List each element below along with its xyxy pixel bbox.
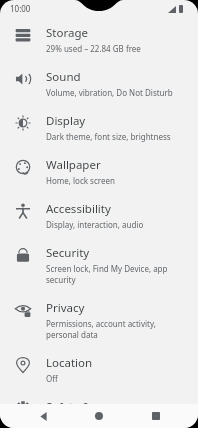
staticText: Emergency SOS, medical info, alerts — [46, 417, 181, 421]
staticText: Home, lock screen — [46, 175, 115, 186]
button[interactable]: Accessibility — [0, 193, 198, 237]
staticText: Wallpaper — [46, 157, 101, 173]
button[interactable]: Display — [0, 105, 198, 149]
staticText: Volume, vibration, Do Not Disturb — [46, 87, 173, 98]
button[interactable]: Back — [29, 404, 57, 428]
staticText: 29% used – 22.84 GB free — [46, 43, 141, 54]
staticText: Accessibility — [46, 201, 111, 217]
staticText: Display, interaction, audio — [46, 219, 144, 230]
staticText: Location — [46, 355, 93, 371]
staticText: Screen lock, Find My Device, app securit… — [46, 263, 188, 285]
staticText: Safety & emergency — [46, 399, 155, 415]
staticText: 10:00 — [10, 3, 31, 14]
staticText: Display — [46, 113, 86, 129]
button[interactable]: Sound — [0, 61, 198, 105]
button[interactable]: Security — [0, 237, 198, 292]
staticText: Off — [46, 373, 58, 384]
staticText: Security — [46, 245, 90, 261]
button[interactable]: Storage — [0, 17, 198, 61]
button[interactable]: Recents — [142, 404, 170, 428]
button[interactable]: Privacy — [0, 292, 198, 347]
button[interactable]: Home — [85, 404, 113, 428]
staticText: Dark theme, font size, brightness — [46, 131, 171, 142]
staticText: Privacy — [46, 300, 85, 316]
staticText: Sound — [46, 69, 81, 85]
button[interactable]: Location — [0, 347, 198, 391]
button[interactable]: Wallpaper — [0, 149, 198, 193]
staticText: Permissions, account activity, personal … — [46, 318, 188, 340]
button[interactable]: Safety & emergency — [0, 391, 198, 428]
staticText: Storage — [46, 25, 88, 41]
